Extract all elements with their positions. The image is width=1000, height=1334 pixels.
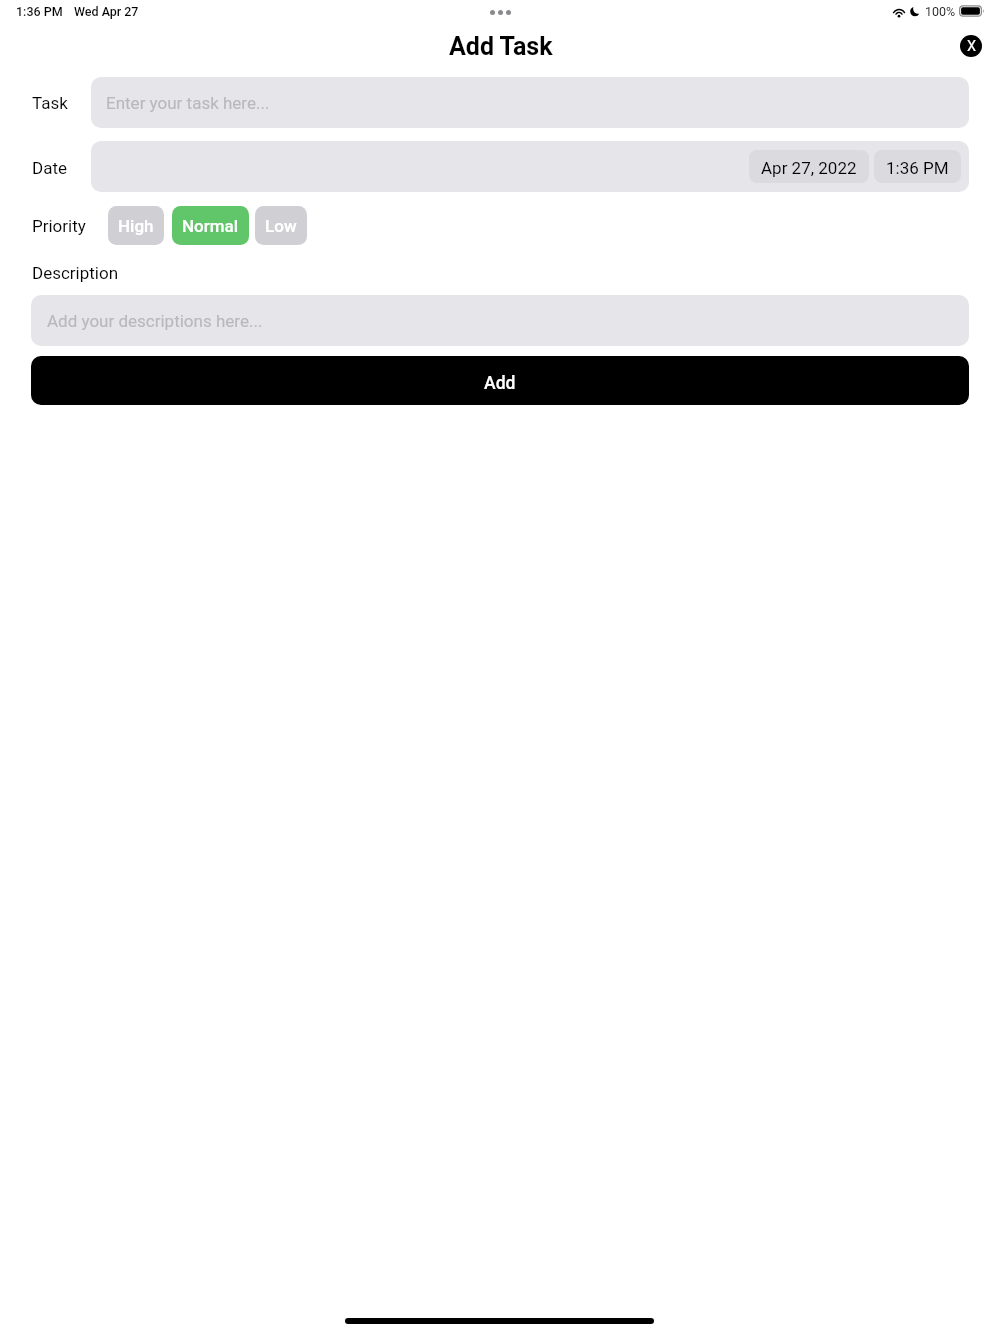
button[interactable]: Add your descriptions here... xyxy=(31,295,969,346)
staticText: Description xyxy=(32,263,119,283)
button[interactable]: Add xyxy=(31,356,969,405)
staticText: Priority xyxy=(32,216,86,236)
button[interactable]: High xyxy=(108,206,164,245)
staticText: Add Task xyxy=(449,32,553,61)
staticText: Add xyxy=(484,373,516,394)
staticText: 1:36 PM xyxy=(886,158,949,178)
staticText: Task xyxy=(32,93,68,113)
button[interactable]: Apr 27, 2022 xyxy=(91,141,969,192)
staticText: Date xyxy=(32,158,67,178)
staticText: Wed Apr 27 xyxy=(74,4,139,19)
button[interactable]: 1:36 PM xyxy=(874,150,961,183)
button[interactable]: Low xyxy=(255,206,307,245)
staticText: Apr 27, 2022 xyxy=(761,158,857,178)
button[interactable]: Close xyxy=(960,35,982,57)
staticText: Enter your task here... xyxy=(106,93,270,113)
staticText: 1:36 PM xyxy=(16,4,63,19)
button[interactable]: Enter your task here... xyxy=(91,77,969,128)
button[interactable]: Normal xyxy=(172,206,249,245)
button[interactable]: Apr 27, 2022 xyxy=(749,150,869,183)
staticText: Low xyxy=(265,216,297,236)
staticText: 100% xyxy=(925,4,956,19)
staticText: X xyxy=(967,38,977,55)
staticText: Add your descriptions here... xyxy=(47,311,263,331)
staticText: Normal xyxy=(182,216,239,236)
staticText: High xyxy=(118,216,154,236)
